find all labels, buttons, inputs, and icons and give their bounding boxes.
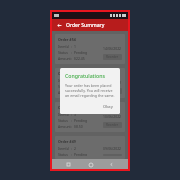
staticText: Item(s) (58, 78, 70, 83)
staticText: : (71, 124, 72, 129)
staticText: Reorder (106, 123, 119, 127)
button[interactable]: Back (107, 160, 116, 169)
staticText: : (71, 146, 72, 151)
staticText: 3 (74, 112, 76, 117)
staticText: Order #50 (58, 105, 76, 110)
staticText: Status (58, 84, 68, 89)
staticText: Order #54 (58, 37, 76, 42)
staticText: : (71, 56, 72, 61)
button[interactable]: Recents (64, 160, 73, 169)
staticText: : (71, 118, 72, 123)
staticText: 09/06/2022 (103, 146, 122, 151)
staticText: $22.45 (74, 56, 85, 61)
staticText: Pending (74, 152, 88, 156)
staticText: Pending (74, 50, 88, 55)
staticText: 1 (74, 44, 76, 49)
staticText: Status (58, 50, 68, 55)
button[interactable]: Order #54 (55, 34, 125, 64)
staticText: 10/06/2022 (103, 114, 122, 119)
staticText: : (71, 90, 72, 95)
staticText: Order #53 (58, 71, 76, 76)
staticText: Amount (58, 90, 71, 95)
staticText: 14/06/2022 (103, 46, 122, 51)
staticText: Item(s) (58, 112, 70, 117)
staticText: Pending (74, 118, 88, 123)
button[interactable]: Home (86, 160, 95, 169)
staticText: : (71, 84, 72, 89)
button[interactable]: Reorder (103, 54, 122, 60)
button[interactable]: Order #50 (55, 102, 125, 132)
button[interactable]: Back (55, 21, 63, 29)
button[interactable]: Order #49 (55, 136, 125, 159)
button[interactable]: Order #53 (55, 68, 125, 98)
staticText: $161.20 (74, 90, 87, 95)
button[interactable]: Okay (101, 103, 115, 110)
staticText: 2 (74, 146, 76, 151)
staticText: : (71, 44, 72, 49)
staticText: Okay (103, 104, 113, 109)
staticText: Congratulations (65, 72, 105, 79)
staticText: 13/06/2022 (103, 80, 122, 85)
staticText: Amount (58, 124, 71, 129)
staticText: : (71, 152, 72, 156)
staticText: Reorder (106, 89, 119, 93)
staticText: Reorder (106, 55, 119, 59)
button[interactable]: Reorder (103, 122, 122, 128)
staticText: Status (58, 118, 68, 123)
staticText: : (71, 112, 72, 117)
staticText: Pending (74, 84, 88, 89)
button[interactable]: Reorder (103, 88, 122, 94)
staticText: 4 (74, 78, 76, 83)
staticText: Status (58, 152, 68, 156)
staticText: Item(s) (58, 146, 70, 151)
staticText: Amount (58, 56, 71, 61)
staticText: Item(s) (58, 44, 70, 49)
staticText: Your order has been placed successfully.… (65, 83, 115, 98)
staticText: : (71, 50, 72, 55)
staticText: $8.50 (74, 124, 83, 129)
staticText: Order #49 (58, 139, 76, 144)
staticText: Order Summary (66, 22, 105, 29)
